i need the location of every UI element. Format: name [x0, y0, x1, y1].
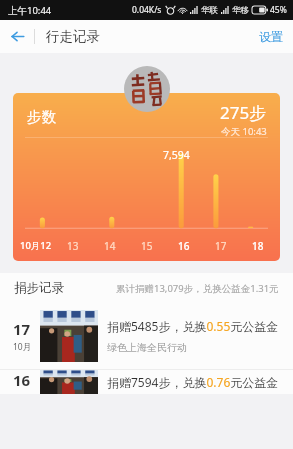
staticText: 捐赠5485步，兑换0.55元公益金	[107, 318, 279, 334]
staticText: 7,594	[163, 148, 190, 162]
button[interactable]: 16	[0, 370, 293, 394]
staticText: 17	[13, 319, 31, 339]
staticText: 0.04K/s	[132, 4, 162, 16]
staticText: 16	[13, 370, 31, 390]
staticText: 10月	[13, 341, 32, 353]
staticText: 设置	[259, 29, 283, 44]
staticText: 行走记录	[46, 28, 100, 45]
button[interactable]: Logo	[124, 66, 170, 112]
button[interactable]: 捐步记录	[0, 273, 293, 303]
button[interactable]: 设置	[249, 22, 293, 51]
staticText: 18	[252, 239, 264, 253]
staticText: 17	[215, 239, 227, 253]
staticText: 16	[178, 239, 190, 253]
staticText: 14	[104, 239, 116, 253]
staticText: 10月12	[20, 239, 52, 252]
staticText: 累计捐赠13,079步，兑换公益金1.31元	[116, 282, 279, 295]
staticText: 45%	[270, 4, 287, 16]
button[interactable]: Back	[0, 20, 34, 53]
staticText: 15	[141, 239, 153, 253]
staticText: 今天 10:43	[221, 125, 267, 138]
staticText: 步数	[27, 108, 56, 126]
staticText: 捐步记录	[14, 280, 64, 296]
staticText: 275步	[220, 101, 267, 124]
staticText: 13	[67, 239, 79, 253]
staticText: 上午10:44	[8, 4, 52, 17]
staticText: 华联	[201, 5, 218, 16]
staticText: 捐赠7594步，兑换0.76元公益金	[107, 374, 279, 390]
button[interactable]: 17	[0, 303, 293, 369]
button[interactable]: 步数	[13, 93, 280, 261]
staticText: 华移	[232, 5, 249, 16]
staticText: 绿色上海全民行动	[107, 341, 187, 354]
